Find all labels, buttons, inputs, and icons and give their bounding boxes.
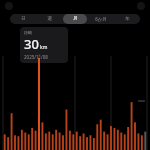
- button[interactable]: 6か月: [89, 14, 113, 24]
- staticText: 2025/11/08: [24, 54, 48, 60]
- staticText: km: [40, 44, 48, 51]
- staticText: 距離: [24, 30, 32, 35]
- staticText: 月: [73, 16, 78, 22]
- staticText: 6か月: [95, 16, 107, 22]
- button[interactable]: 週: [37, 14, 61, 24]
- button[interactable]: Back: [5, 2, 13, 10]
- button[interactable]: 日: [11, 14, 35, 24]
- button[interactable]: 距離: [20, 27, 68, 63]
- button[interactable]: Profile: [137, 2, 145, 10]
- button[interactable]: 月: [63, 14, 87, 24]
- button[interactable]: [0, 0, 150, 150]
- staticText: 年: [125, 16, 130, 22]
- staticText: 週: [47, 16, 52, 22]
- button[interactable]: 年: [115, 14, 139, 24]
- staticText: 30: [24, 35, 39, 53]
- staticText: 日: [21, 16, 26, 22]
